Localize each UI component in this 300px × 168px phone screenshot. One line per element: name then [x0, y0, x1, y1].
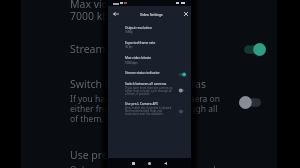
button[interactable]: Switch between all cameras [125, 82, 167, 86]
staticText: 30 fps [125, 45, 133, 49]
staticText: Only enable this if preview is skewed. N… [125, 106, 172, 116]
staticText: Max video bitrate [125, 56, 152, 60]
staticText: Expected frame rate [125, 41, 156, 45]
staticText: Switch between all cameras [70, 77, 207, 91]
button[interactable]: Toggle [177, 108, 187, 115]
staticText: 1080p [125, 30, 133, 34]
staticText: Video Settings [140, 12, 163, 16]
staticText: 7000 kbps [70, 9, 121, 23]
button[interactable]: Close [180, 8, 191, 19]
button[interactable]: Recents [129, 159, 138, 168]
staticText: If you have more than one camera on [70, 93, 220, 105]
button[interactable]: Back [110, 8, 121, 19]
button[interactable]: Expected frame rate [125, 41, 156, 45]
button[interactable]: Back [161, 159, 170, 168]
staticText: Max video bitrate [70, 0, 156, 11]
button[interactable]: Toggle [177, 87, 187, 94]
button[interactable]: Toggle [240, 94, 261, 111]
staticText: Only enable this if preview is skewed. [70, 164, 218, 168]
button[interactable]: Output resolution [125, 26, 152, 30]
staticText: of them, if possible. [70, 113, 149, 125]
button[interactable]: Toggle [177, 71, 187, 78]
staticText: If you have more than one camera on eith… [125, 86, 173, 96]
button[interactable]: Max video bitrate [125, 56, 152, 60]
button[interactable]: Toggle [244, 41, 265, 58]
staticText: Use pre-L Camera API [70, 148, 178, 162]
staticText: Output resolution [125, 26, 152, 30]
button[interactable]: Use pre-L Camera API [125, 102, 158, 106]
staticText: Stream status indicator [70, 42, 185, 56]
staticText: 7000 kbps [125, 61, 138, 65]
button[interactable]: Stream status indicator [125, 71, 160, 75]
button[interactable]: Home [145, 159, 154, 168]
staticText: either front or back, cycle through all [70, 103, 218, 115]
